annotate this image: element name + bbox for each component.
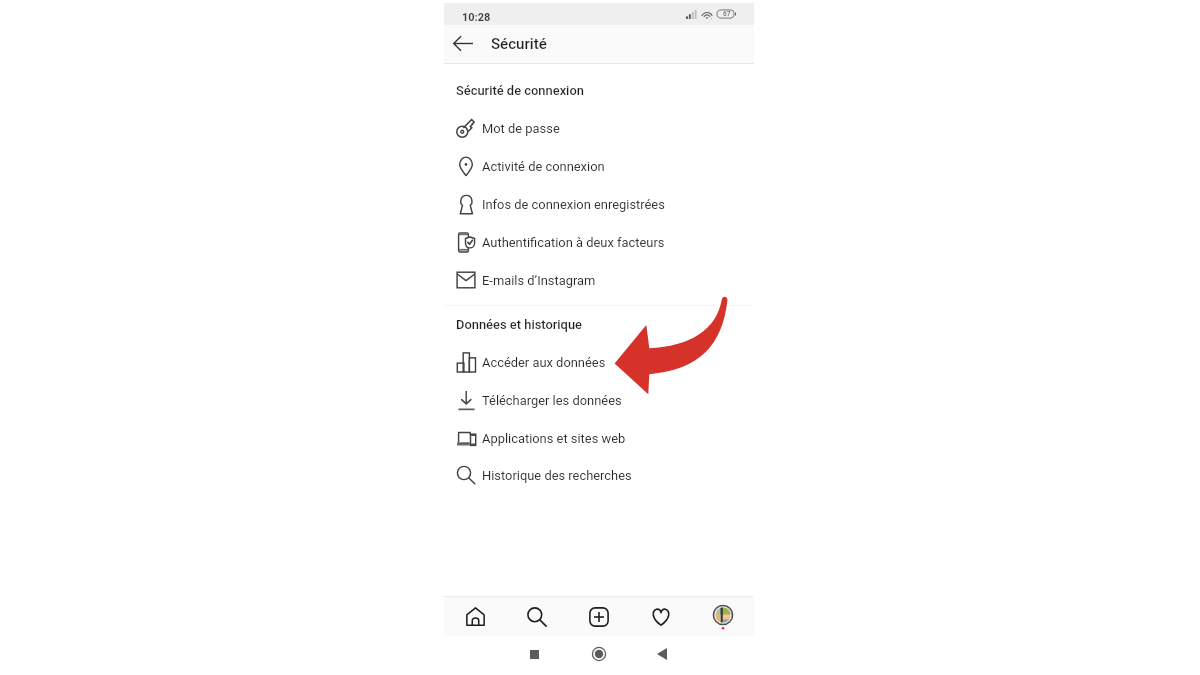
button[interactable]: Home <box>581 636 617 672</box>
staticText: Mot de passe <box>482 121 560 136</box>
button[interactable]: Applications et sites web <box>444 421 754 459</box>
button[interactable]: Infos de connexion enregistrées <box>444 187 754 225</box>
staticText: Données et historique <box>456 317 583 332</box>
button[interactable]: Profile <box>699 597 747 636</box>
button[interactable]: E-mails d’Instagram <box>444 263 754 301</box>
button[interactable]: Activité de connexion <box>444 149 754 187</box>
staticText: Infos de connexion enregistrées <box>482 197 665 212</box>
staticText: E-mails d’Instagram <box>482 273 596 288</box>
staticText: Accéder aux données <box>482 355 606 370</box>
staticText: Activité de connexion <box>482 159 605 174</box>
button[interactable]: Back <box>447 28 479 59</box>
button[interactable]: Create <box>575 597 623 636</box>
button[interactable]: Authentification à deux facteurs <box>444 225 754 263</box>
button[interactable]: Search <box>513 597 561 636</box>
button[interactable]: Recents <box>516 636 552 672</box>
button[interactable]: Accéder aux données <box>444 345 754 383</box>
staticText: 10:28 <box>462 11 491 24</box>
staticText: Sécurité <box>491 35 547 53</box>
staticText: Applications et sites web <box>482 431 626 446</box>
button[interactable]: Activity <box>637 597 685 636</box>
staticText: 67 <box>723 10 731 18</box>
button[interactable]: Back <box>644 636 680 672</box>
staticText: Historique des recherches <box>482 468 632 483</box>
staticText: Authentification à deux facteurs <box>482 235 665 250</box>
staticText: Sécurité de connexion <box>456 83 584 98</box>
button[interactable]: Mot de passe <box>444 111 754 149</box>
staticText: Télécharger les données <box>482 393 622 408</box>
button[interactable]: Historique des recherches <box>444 458 754 496</box>
button[interactable]: Télécharger les données <box>444 383 754 421</box>
button[interactable]: Home <box>451 597 499 636</box>
